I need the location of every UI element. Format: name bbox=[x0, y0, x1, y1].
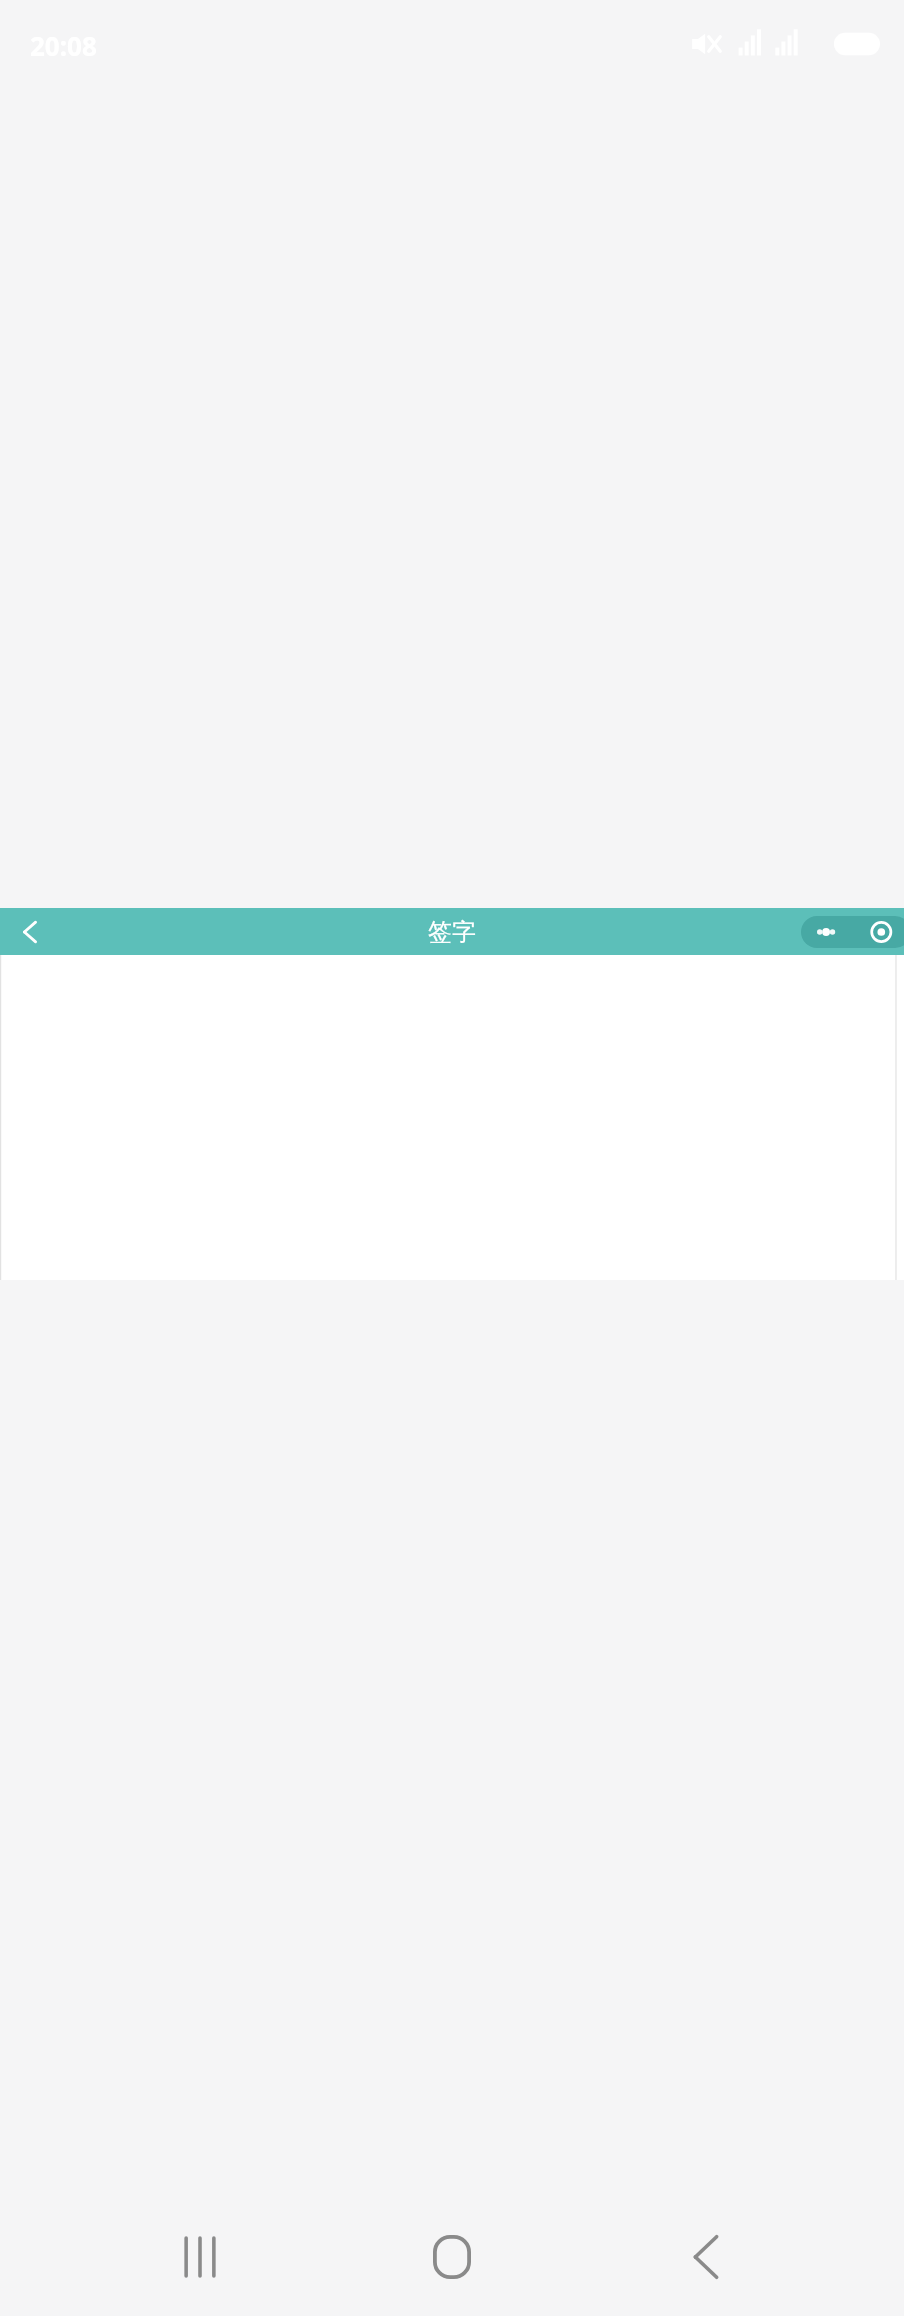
staticText: 签字 bbox=[428, 917, 476, 947]
button[interactable]: Recent apps bbox=[150, 2212, 250, 2302]
button[interactable]: More options and close bbox=[801, 916, 904, 948]
button[interactable]: Back bbox=[656, 2212, 756, 2302]
button[interactable]: Back bbox=[2, 908, 58, 955]
button[interactable]: Home bbox=[402, 2212, 502, 2302]
staticText: 20:08 bbox=[30, 28, 97, 60]
